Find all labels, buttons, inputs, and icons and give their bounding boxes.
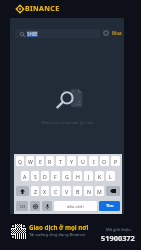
staticText: V	[65, 188, 69, 195]
button[interactable]: Voice input	[42, 201, 52, 211]
button[interactable]: E	[36, 156, 44, 166]
button[interactable]: Y	[67, 156, 76, 166]
staticText: E	[39, 158, 42, 165]
button[interactable]: W	[26, 156, 34, 166]
staticText: BINANCE	[25, 4, 60, 14]
button[interactable]: D	[41, 171, 49, 181]
button[interactable]: M	[95, 186, 104, 196]
button[interactable]: S	[31, 171, 39, 181]
staticText: S	[34, 173, 37, 180]
button[interactable]: BINANCE	[16, 3, 60, 15]
staticText: J	[88, 173, 90, 180]
button[interactable]: P	[111, 156, 120, 166]
button[interactable]: H	[73, 171, 82, 181]
button[interactable]: O	[100, 156, 109, 166]
staticText: U	[81, 158, 85, 165]
button[interactable]: Tìm	[99, 201, 120, 211]
staticText: K	[98, 173, 102, 180]
staticText: B	[76, 188, 80, 195]
staticText: D	[43, 173, 47, 180]
button[interactable]: R	[46, 156, 54, 166]
staticText: W	[28, 158, 33, 165]
staticText: F	[54, 173, 57, 180]
staticText: C	[54, 188, 58, 195]
staticText: A	[23, 173, 27, 180]
staticText: O	[102, 158, 107, 165]
button[interactable]: Giao dịch ở mọi nơi	[29, 223, 89, 238]
button[interactable]: Z	[31, 186, 39, 196]
button[interactable]: dấu cách	[54, 201, 97, 211]
staticText: X	[43, 188, 47, 195]
staticText: Z	[34, 188, 37, 195]
button[interactable]: B	[73, 186, 82, 196]
staticText: Tìm	[106, 203, 114, 209]
staticText: L	[109, 173, 112, 180]
staticText: 51900372	[101, 233, 135, 243]
button[interactable]: 123	[16, 201, 28, 211]
button[interactable]: K	[95, 171, 104, 181]
staticText: SHIB	[27, 31, 38, 37]
button[interactable]: U	[78, 156, 87, 166]
button[interactable]: X	[41, 186, 49, 196]
staticText: Q	[18, 158, 23, 165]
button[interactable]: Mua	[111, 29, 122, 37]
button[interactable]: Settings	[101, 28, 111, 38]
button[interactable]: Q	[16, 156, 24, 166]
button[interactable]: V	[62, 186, 71, 196]
staticText: Không tìm thấy bản ghi nào	[41, 120, 94, 125]
button[interactable]: L	[106, 171, 115, 181]
button[interactable]: N	[84, 186, 93, 196]
button[interactable]: Shift	[16, 186, 29, 196]
staticText: H	[76, 173, 80, 180]
staticText: T	[59, 158, 62, 165]
staticText: R	[48, 158, 52, 165]
staticText: N	[87, 188, 91, 195]
button[interactable]: J	[84, 171, 93, 181]
staticText: Tải xuống ứng dụng Binance	[29, 232, 86, 238]
button[interactable]: T	[56, 156, 65, 166]
staticText: 123	[19, 204, 26, 209]
button[interactable]: SHIB	[15, 29, 100, 38]
button[interactable]: Change keyboard	[30, 201, 40, 211]
button[interactable]: G	[62, 171, 71, 181]
staticText: Mã giới thiệu	[106, 227, 131, 232]
staticText: I	[93, 158, 95, 165]
button[interactable]: I	[89, 156, 98, 166]
staticText: Giao dịch ở mọi nơi	[29, 223, 89, 231]
staticText: Mua	[112, 30, 122, 36]
staticText: P	[114, 158, 118, 165]
button[interactable]: F	[51, 171, 60, 181]
staticText: G	[65, 173, 69, 180]
staticText: Y	[70, 158, 73, 165]
button[interactable]: C	[51, 186, 60, 196]
staticText: dấu cách	[67, 204, 84, 209]
button[interactable]: A	[21, 171, 29, 181]
button[interactable]: Backspace	[106, 186, 120, 196]
staticText: M	[97, 188, 102, 195]
